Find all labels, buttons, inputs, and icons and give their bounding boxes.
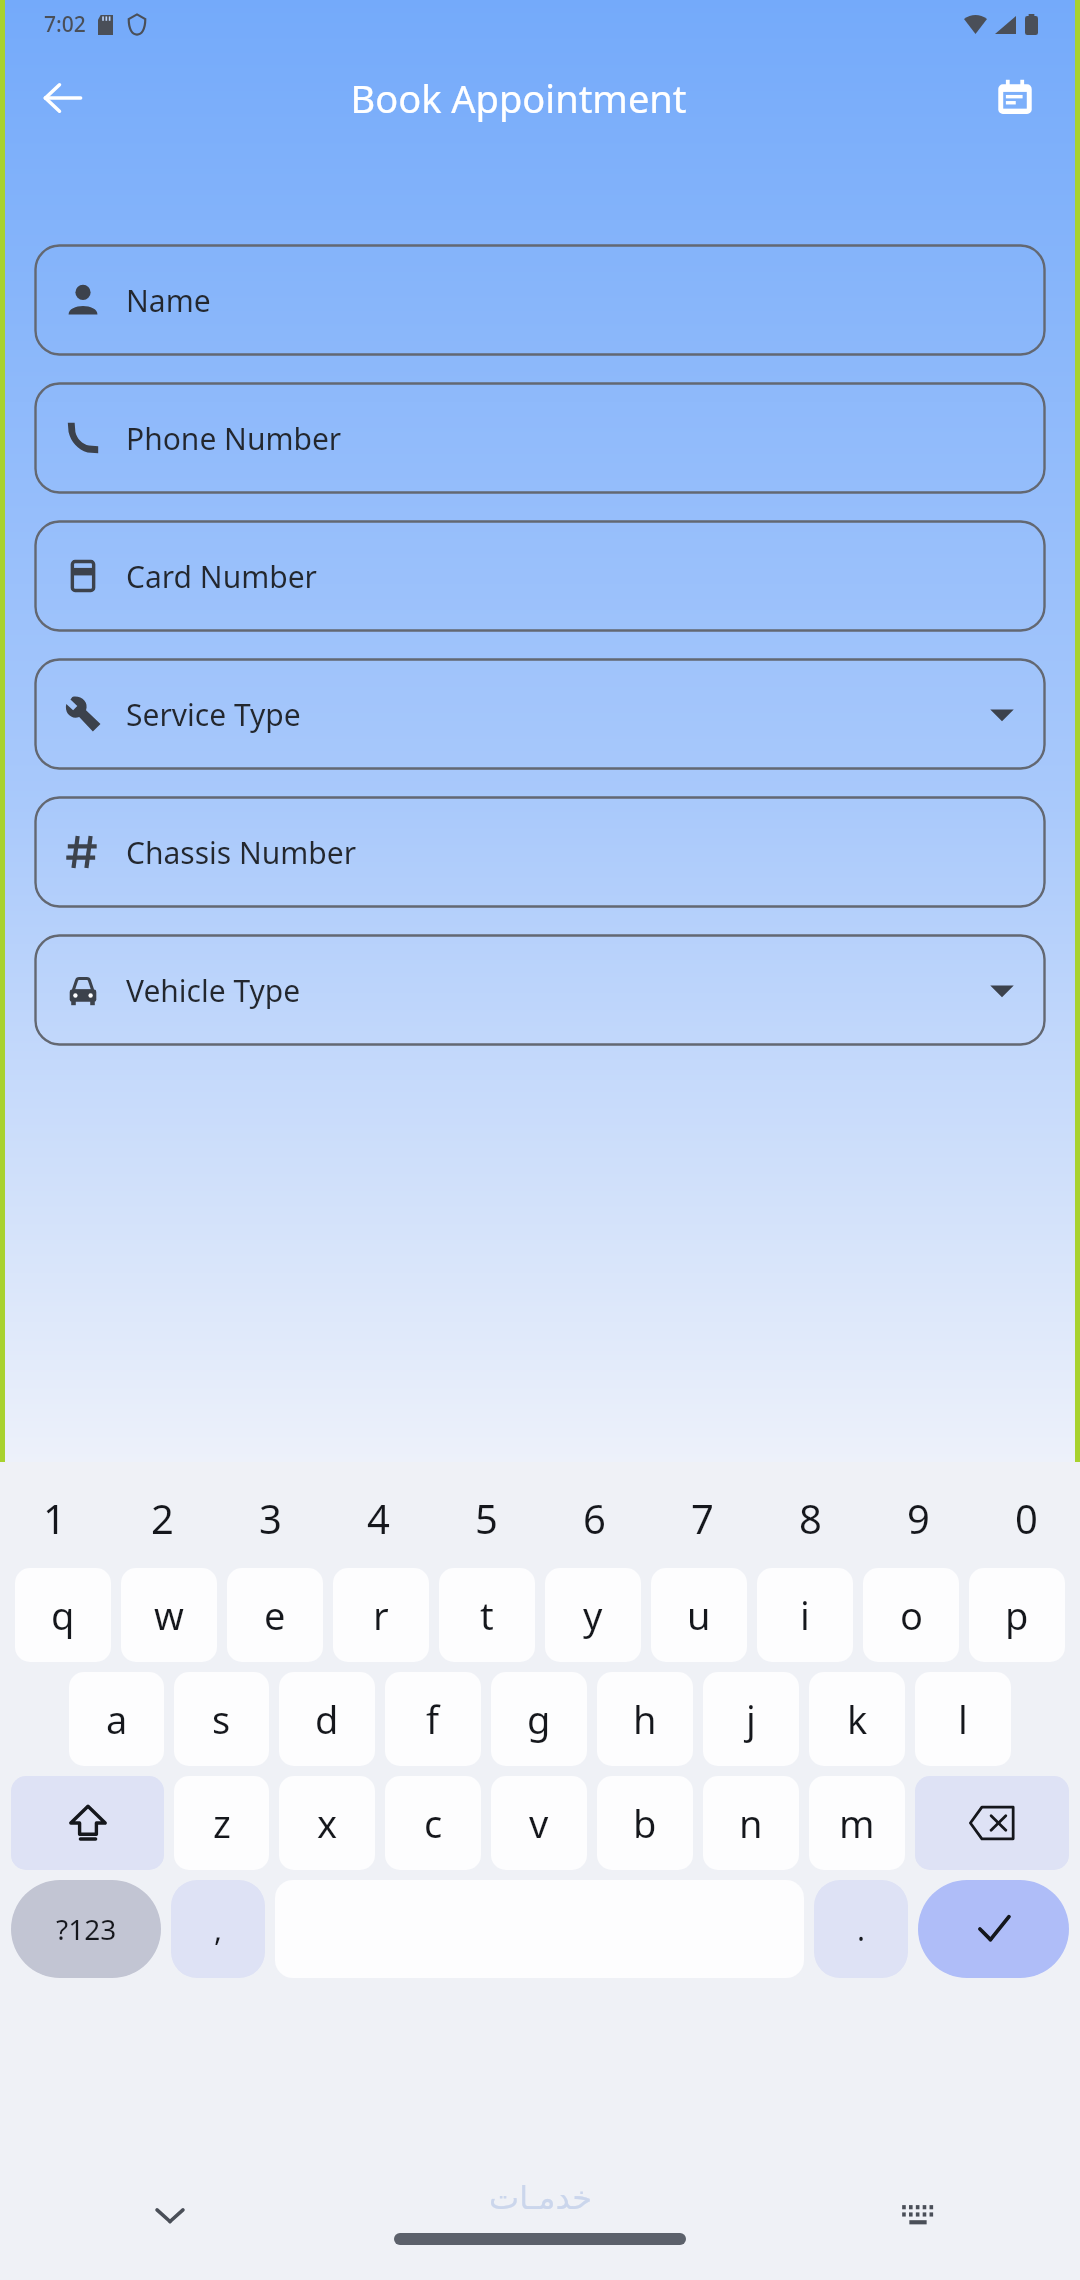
button[interactable]: r — [333, 1568, 429, 1662]
staticText: h — [633, 1693, 657, 1745]
button[interactable]: 1 — [0, 1476, 108, 1560]
staticText: u — [687, 1589, 711, 1641]
button[interactable]: 2 — [108, 1476, 216, 1560]
button[interactable]: 3 — [216, 1476, 324, 1560]
button[interactable]: j — [703, 1672, 799, 1766]
button[interactable]: 0 — [972, 1476, 1080, 1560]
button[interactable]: Backspace — [915, 1776, 1069, 1870]
button[interactable]: k — [809, 1672, 905, 1766]
button[interactable]: Switch keyboard — [888, 2185, 948, 2245]
button[interactable]: 4 — [324, 1476, 432, 1560]
staticText: 4 — [367, 1491, 390, 1545]
staticText: r — [373, 1589, 389, 1641]
staticText: 7 — [691, 1491, 714, 1545]
button[interactable]: s — [174, 1672, 269, 1766]
button[interactable]: b — [597, 1776, 693, 1870]
staticText: w — [154, 1589, 184, 1641]
staticText: ?123 — [56, 1910, 117, 1948]
staticText: Service Type — [126, 694, 301, 735]
button[interactable]: e — [227, 1568, 323, 1662]
button[interactable]: f — [385, 1672, 481, 1766]
staticText: , — [214, 1909, 223, 1950]
button[interactable]: Phone Number — [34, 382, 1046, 494]
button[interactable]: 5 — [432, 1476, 540, 1560]
button[interactable]: q — [15, 1568, 111, 1662]
button[interactable]: i — [757, 1568, 853, 1662]
staticText: c — [424, 1797, 443, 1849]
button[interactable]: n — [703, 1776, 799, 1870]
staticText: i — [800, 1589, 810, 1641]
staticText: x — [317, 1797, 338, 1849]
staticText: Name — [126, 280, 211, 321]
button[interactable]: t — [439, 1568, 535, 1662]
staticText: v — [529, 1797, 549, 1849]
button[interactable]: l — [915, 1672, 1011, 1766]
staticText: . — [857, 1909, 866, 1950]
button[interactable]: x — [279, 1776, 375, 1870]
staticText: d — [315, 1693, 339, 1745]
staticText: 3 — [259, 1491, 282, 1545]
button[interactable]: c — [385, 1776, 481, 1870]
button[interactable]: Open calendar — [984, 67, 1046, 129]
button[interactable]: , — [171, 1880, 265, 1978]
staticText: Phone Number — [126, 418, 342, 459]
button[interactable]: a — [69, 1672, 164, 1766]
button[interactable]: 8 — [756, 1476, 864, 1560]
staticText: y — [583, 1589, 603, 1641]
staticText: 6 — [583, 1491, 606, 1545]
button[interactable]: v — [491, 1776, 587, 1870]
button[interactable]: Vehicle Type — [34, 934, 1046, 1046]
button[interactable]: u — [651, 1568, 747, 1662]
button[interactable]: o — [863, 1568, 959, 1662]
button[interactable]: 7 — [648, 1476, 756, 1560]
staticText: 1 — [43, 1491, 66, 1545]
staticText: e — [264, 1589, 286, 1641]
staticText: f — [426, 1693, 440, 1745]
button[interactable]: Chassis Number — [34, 796, 1046, 908]
staticText: 0 — [1015, 1491, 1038, 1545]
staticText: Vehicle Type — [126, 970, 301, 1011]
button[interactable]: Enter — [918, 1880, 1069, 1978]
staticText: o — [900, 1589, 923, 1641]
staticText: 9 — [907, 1491, 930, 1545]
staticText: t — [480, 1589, 494, 1641]
button[interactable]: Shift — [11, 1776, 164, 1870]
button[interactable]: Service Type — [34, 658, 1046, 770]
staticText: n — [739, 1797, 763, 1849]
staticText: 2 — [151, 1491, 174, 1545]
staticText: k — [847, 1693, 868, 1745]
staticText: a — [106, 1693, 128, 1745]
staticText: j — [746, 1693, 756, 1745]
staticText: b — [633, 1797, 657, 1849]
button[interactable]: p — [969, 1568, 1065, 1662]
staticText: 7:02 — [44, 10, 86, 39]
staticText: Card Number — [126, 556, 317, 597]
button[interactable]: . — [814, 1880, 908, 1978]
staticText: q — [51, 1589, 75, 1641]
staticText: l — [958, 1693, 968, 1745]
staticText: Book Appointment — [350, 72, 687, 124]
button[interactable]: 6 — [540, 1476, 648, 1560]
staticText: Chassis Number — [126, 832, 357, 873]
staticText: z — [213, 1797, 231, 1849]
staticText: p — [1005, 1589, 1029, 1641]
staticText: g — [527, 1693, 551, 1745]
staticText: خدمـات — [489, 2179, 592, 2216]
button[interactable]: Hide keyboard — [140, 2185, 200, 2245]
staticText: 5 — [475, 1491, 498, 1545]
button[interactable]: g — [491, 1672, 587, 1766]
staticText: s — [212, 1693, 231, 1745]
button[interactable]: Back — [32, 67, 94, 129]
staticText: m — [839, 1797, 875, 1849]
button[interactable]: m — [809, 1776, 905, 1870]
button[interactable]: w — [121, 1568, 217, 1662]
button[interactable]: Name — [34, 244, 1046, 356]
button[interactable]: 9 — [864, 1476, 972, 1560]
button[interactable]: z — [174, 1776, 269, 1870]
button[interactable]: ?123 — [11, 1880, 161, 1978]
button[interactable]: y — [545, 1568, 641, 1662]
button[interactable]: d — [279, 1672, 375, 1766]
button[interactable]: h — [597, 1672, 693, 1766]
button[interactable]: Card Number — [34, 520, 1046, 632]
